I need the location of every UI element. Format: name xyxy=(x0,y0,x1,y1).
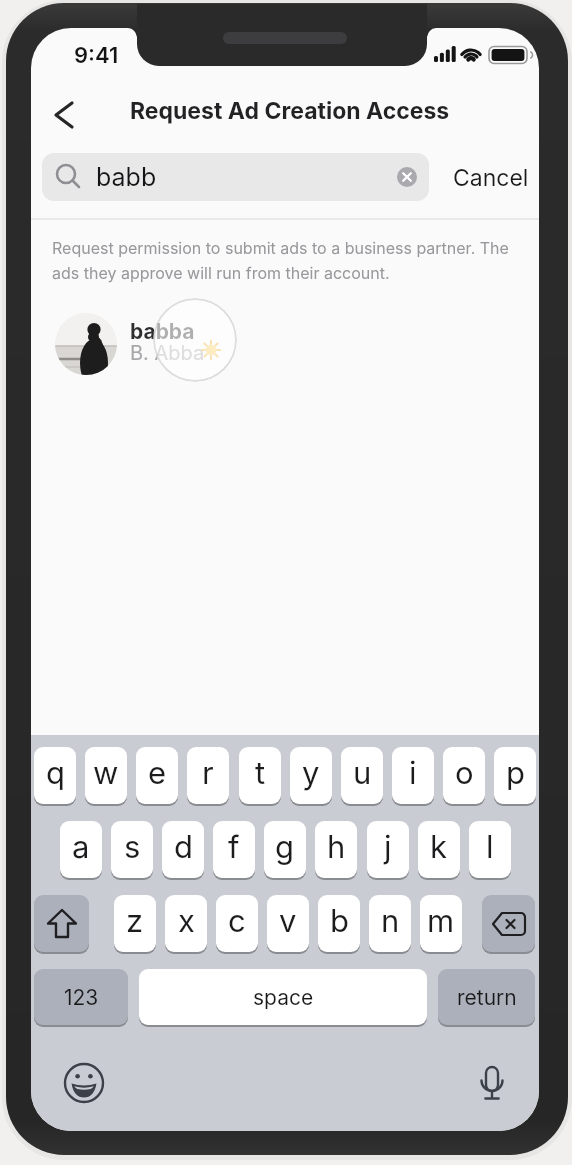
staticText: Request Ad Creation Access xyxy=(130,97,450,125)
button[interactable]: t xyxy=(239,747,281,804)
button[interactable]: h xyxy=(315,821,357,878)
staticText: x xyxy=(178,902,195,940)
button[interactable]: space xyxy=(139,969,427,1025)
button[interactable]: l xyxy=(469,821,511,878)
staticText: c xyxy=(228,902,246,940)
staticText: h xyxy=(327,828,346,866)
staticText: z xyxy=(126,902,144,940)
button[interactable] xyxy=(63,1062,105,1104)
staticText: t xyxy=(255,754,266,792)
staticText: 123 xyxy=(64,985,99,1010)
staticText: a xyxy=(72,828,90,866)
staticText: space xyxy=(253,985,314,1010)
staticText: f xyxy=(228,828,240,866)
button[interactable]: f xyxy=(213,821,255,878)
button[interactable]: o xyxy=(443,747,485,804)
button[interactable]: i xyxy=(392,747,434,804)
staticText: m xyxy=(427,902,455,940)
button[interactable]: k xyxy=(418,821,460,878)
staticText: e xyxy=(148,754,167,792)
button[interactable]: r xyxy=(187,747,229,804)
staticText: babb xyxy=(96,162,157,192)
staticText: y xyxy=(302,754,320,792)
button[interactable]: Cancel xyxy=(448,158,533,198)
button[interactable]: 123 xyxy=(34,969,128,1025)
button[interactable]: n xyxy=(369,895,411,952)
button[interactable]: v xyxy=(267,895,309,952)
button[interactable]: x xyxy=(165,895,207,952)
button[interactable]: d xyxy=(162,821,204,878)
staticText: g xyxy=(275,828,295,866)
staticText: b xyxy=(330,902,349,940)
staticText: d xyxy=(174,828,193,866)
button[interactable] xyxy=(482,895,535,952)
staticText: w xyxy=(93,754,119,792)
button[interactable]: j xyxy=(367,821,409,878)
staticText: babba xyxy=(130,319,195,344)
button[interactable]: e xyxy=(136,747,178,804)
button[interactable] xyxy=(34,895,89,952)
button[interactable]: a xyxy=(60,821,102,878)
button[interactable]: c xyxy=(216,895,258,952)
button[interactable] xyxy=(43,90,87,134)
button[interactable]: p xyxy=(494,747,536,804)
staticText: n xyxy=(381,902,400,940)
button[interactable] xyxy=(45,303,445,385)
button[interactable]: b xyxy=(318,895,360,952)
button[interactable]: u xyxy=(341,747,383,804)
staticText: l xyxy=(486,828,494,866)
staticText: 9:41 xyxy=(74,42,119,69)
button[interactable]: return xyxy=(438,969,535,1025)
staticText: u xyxy=(353,754,372,792)
staticText: Request permission to submit ads to a bu… xyxy=(52,238,509,257)
staticText: s xyxy=(124,828,141,866)
staticText: i xyxy=(409,754,417,792)
staticText: r xyxy=(202,754,214,792)
staticText: B. Abba xyxy=(130,341,205,365)
button[interactable]: s xyxy=(111,821,153,878)
staticText: ads they approve will run from their acc… xyxy=(52,263,390,282)
staticText: q xyxy=(46,754,65,792)
staticText: k xyxy=(430,828,448,866)
staticText: Cancel xyxy=(453,164,529,192)
button[interactable]: y xyxy=(290,747,332,804)
button[interactable] xyxy=(471,1061,513,1109)
staticText: p xyxy=(506,754,525,792)
staticText: return xyxy=(457,985,517,1010)
staticText: o xyxy=(455,754,474,792)
staticText: j xyxy=(384,828,392,866)
button[interactable]: q xyxy=(34,747,76,804)
staticText: v xyxy=(279,902,297,940)
button[interactable]: m xyxy=(420,895,462,952)
button[interactable]: g xyxy=(264,821,306,878)
button[interactable]: babb xyxy=(42,153,429,201)
button[interactable]: w xyxy=(85,747,127,804)
button[interactable]: z xyxy=(114,895,156,952)
